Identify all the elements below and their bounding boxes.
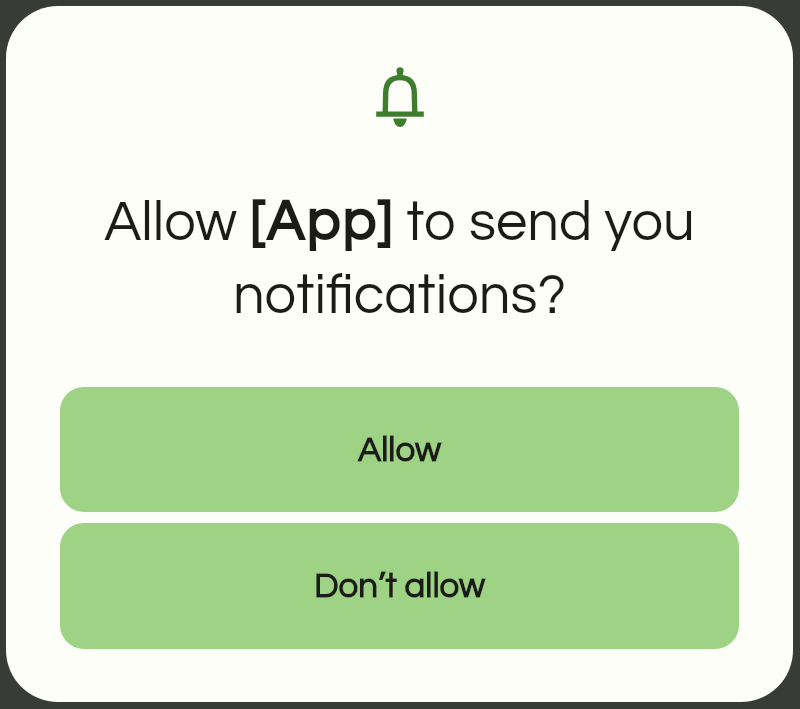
button[interactable]: Allow xyxy=(60,387,739,512)
staticText: Allow xyxy=(358,432,442,468)
staticText: Allow [App] to send you notifications? xyxy=(46,194,753,325)
staticText: Don’t allow xyxy=(314,568,486,604)
other: Notifications xyxy=(376,67,424,128)
button[interactable]: Don’t allow xyxy=(60,523,739,649)
